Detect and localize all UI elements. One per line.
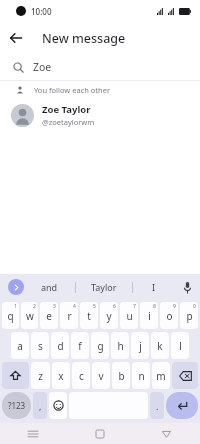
staticText: I xyxy=(152,281,156,293)
staticText: p xyxy=(186,309,193,323)
staticText: k xyxy=(157,339,163,353)
button[interactable]: Zoe xyxy=(0,54,200,80)
staticText: 7 xyxy=(133,303,136,310)
button[interactable]: r xyxy=(60,302,78,329)
staticText: and xyxy=(41,281,58,293)
staticText: @zoetaylorwm xyxy=(42,117,95,127)
staticText: 2 xyxy=(33,303,36,310)
staticText: j xyxy=(139,339,142,353)
button[interactable]: f xyxy=(71,332,89,359)
button[interactable]: t xyxy=(80,302,98,329)
button[interactable]: c xyxy=(72,362,90,389)
button[interactable]: More suggestions xyxy=(8,279,24,295)
button[interactable]: Emoji xyxy=(49,392,67,419)
staticText: Taylor xyxy=(91,281,117,293)
staticText: o xyxy=(166,309,173,323)
staticText: h xyxy=(117,339,124,353)
button[interactable]: h xyxy=(111,332,129,359)
button[interactable]: q xyxy=(2,302,19,329)
staticText: 3 xyxy=(53,303,56,310)
button[interactable]: j xyxy=(131,332,149,359)
button[interactable]: Taylor xyxy=(76,274,132,300)
button[interactable]: i xyxy=(140,302,158,329)
staticText: 10:00 xyxy=(31,6,52,17)
staticText: 5 xyxy=(93,303,96,310)
staticText: , xyxy=(39,400,42,412)
button[interactable]: Enter xyxy=(166,392,198,419)
staticText: y xyxy=(106,309,112,323)
staticText: 0 xyxy=(193,303,196,310)
button[interactable]: . xyxy=(150,392,164,419)
button[interactable]: w xyxy=(21,302,38,329)
staticText: 4 xyxy=(73,303,76,310)
staticText: r xyxy=(67,309,72,323)
staticText: New message xyxy=(42,30,126,47)
staticText: 6 xyxy=(113,303,116,310)
button[interactable]: k xyxy=(151,332,169,359)
staticText: x xyxy=(58,369,64,383)
staticText: m xyxy=(156,369,166,383)
button[interactable]: , xyxy=(33,392,47,419)
button[interactable]: x xyxy=(52,362,70,389)
staticText: b xyxy=(118,369,125,383)
button[interactable]: y xyxy=(100,302,118,329)
button[interactable]: u xyxy=(120,302,138,329)
staticText: . xyxy=(156,400,159,412)
button[interactable]: v xyxy=(92,362,110,389)
staticText: f xyxy=(78,339,82,353)
staticText: a xyxy=(17,339,23,353)
staticText: You follow each other xyxy=(34,85,111,95)
staticText: Zoe Taylor xyxy=(42,103,91,116)
staticText: i xyxy=(148,309,151,323)
staticText: u xyxy=(126,309,133,323)
button[interactable]: Zoe Taylor xyxy=(0,98,200,132)
button[interactable]: z xyxy=(31,362,50,389)
staticText: t xyxy=(87,309,91,323)
button[interactable]: Home xyxy=(66,423,133,444)
button[interactable]: Back xyxy=(0,22,32,54)
button[interactable]: Voice input xyxy=(174,274,200,300)
button[interactable]: a xyxy=(11,332,29,359)
staticText: n xyxy=(138,369,145,383)
staticText: 8 xyxy=(153,303,156,310)
staticText: ?123 xyxy=(8,400,26,411)
button[interactable]: s xyxy=(31,332,49,359)
staticText: z xyxy=(38,369,43,383)
button[interactable]: Shift xyxy=(2,362,29,389)
staticText: 9 xyxy=(173,303,176,310)
staticText: w xyxy=(26,309,34,323)
button[interactable]: ?123 xyxy=(2,392,31,419)
button[interactable]: m xyxy=(152,362,170,389)
button[interactable]: l xyxy=(171,332,189,359)
button[interactable]: Back xyxy=(133,423,200,444)
button[interactable]: g xyxy=(91,332,109,359)
button[interactable]: d xyxy=(51,332,69,359)
button[interactable]: Recents xyxy=(0,423,66,444)
staticText: l xyxy=(179,339,182,353)
staticText: q xyxy=(7,309,14,323)
button[interactable]: Backspace xyxy=(172,362,198,389)
staticText: d xyxy=(57,339,64,353)
staticText: Zoe xyxy=(33,60,52,74)
button[interactable]: e xyxy=(40,302,58,329)
button[interactable]: p xyxy=(180,302,198,329)
staticText: e xyxy=(46,309,52,323)
staticText: g xyxy=(97,339,104,353)
staticText: s xyxy=(38,339,43,353)
staticText: 1 xyxy=(14,303,17,310)
button[interactable]: and xyxy=(24,274,75,300)
staticText: v xyxy=(98,369,104,383)
button[interactable]: n xyxy=(132,362,150,389)
staticText: c xyxy=(79,369,84,383)
button[interactable]: I xyxy=(133,274,174,300)
button[interactable]: b xyxy=(112,362,130,389)
button[interactable]: o xyxy=(160,302,178,329)
